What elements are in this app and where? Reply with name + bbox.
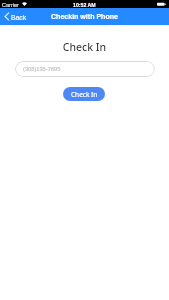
button[interactable]: Check In bbox=[63, 87, 105, 101]
staticText: Back bbox=[11, 14, 27, 22]
button[interactable]: Back bbox=[4, 11, 27, 22]
staticText: Carrier bbox=[2, 2, 19, 8]
other: Wi-Fi signal bbox=[22, 2, 27, 6]
button[interactable]: (308)135-7895 bbox=[15, 61, 155, 77]
staticText: Check In bbox=[0, 40, 169, 54]
staticText: 10:52 AM bbox=[73, 2, 96, 8]
staticText: Checkin with Phone bbox=[51, 13, 118, 21]
staticText: Check In bbox=[71, 90, 98, 99]
staticText: (308)135-7895 bbox=[23, 66, 61, 72]
